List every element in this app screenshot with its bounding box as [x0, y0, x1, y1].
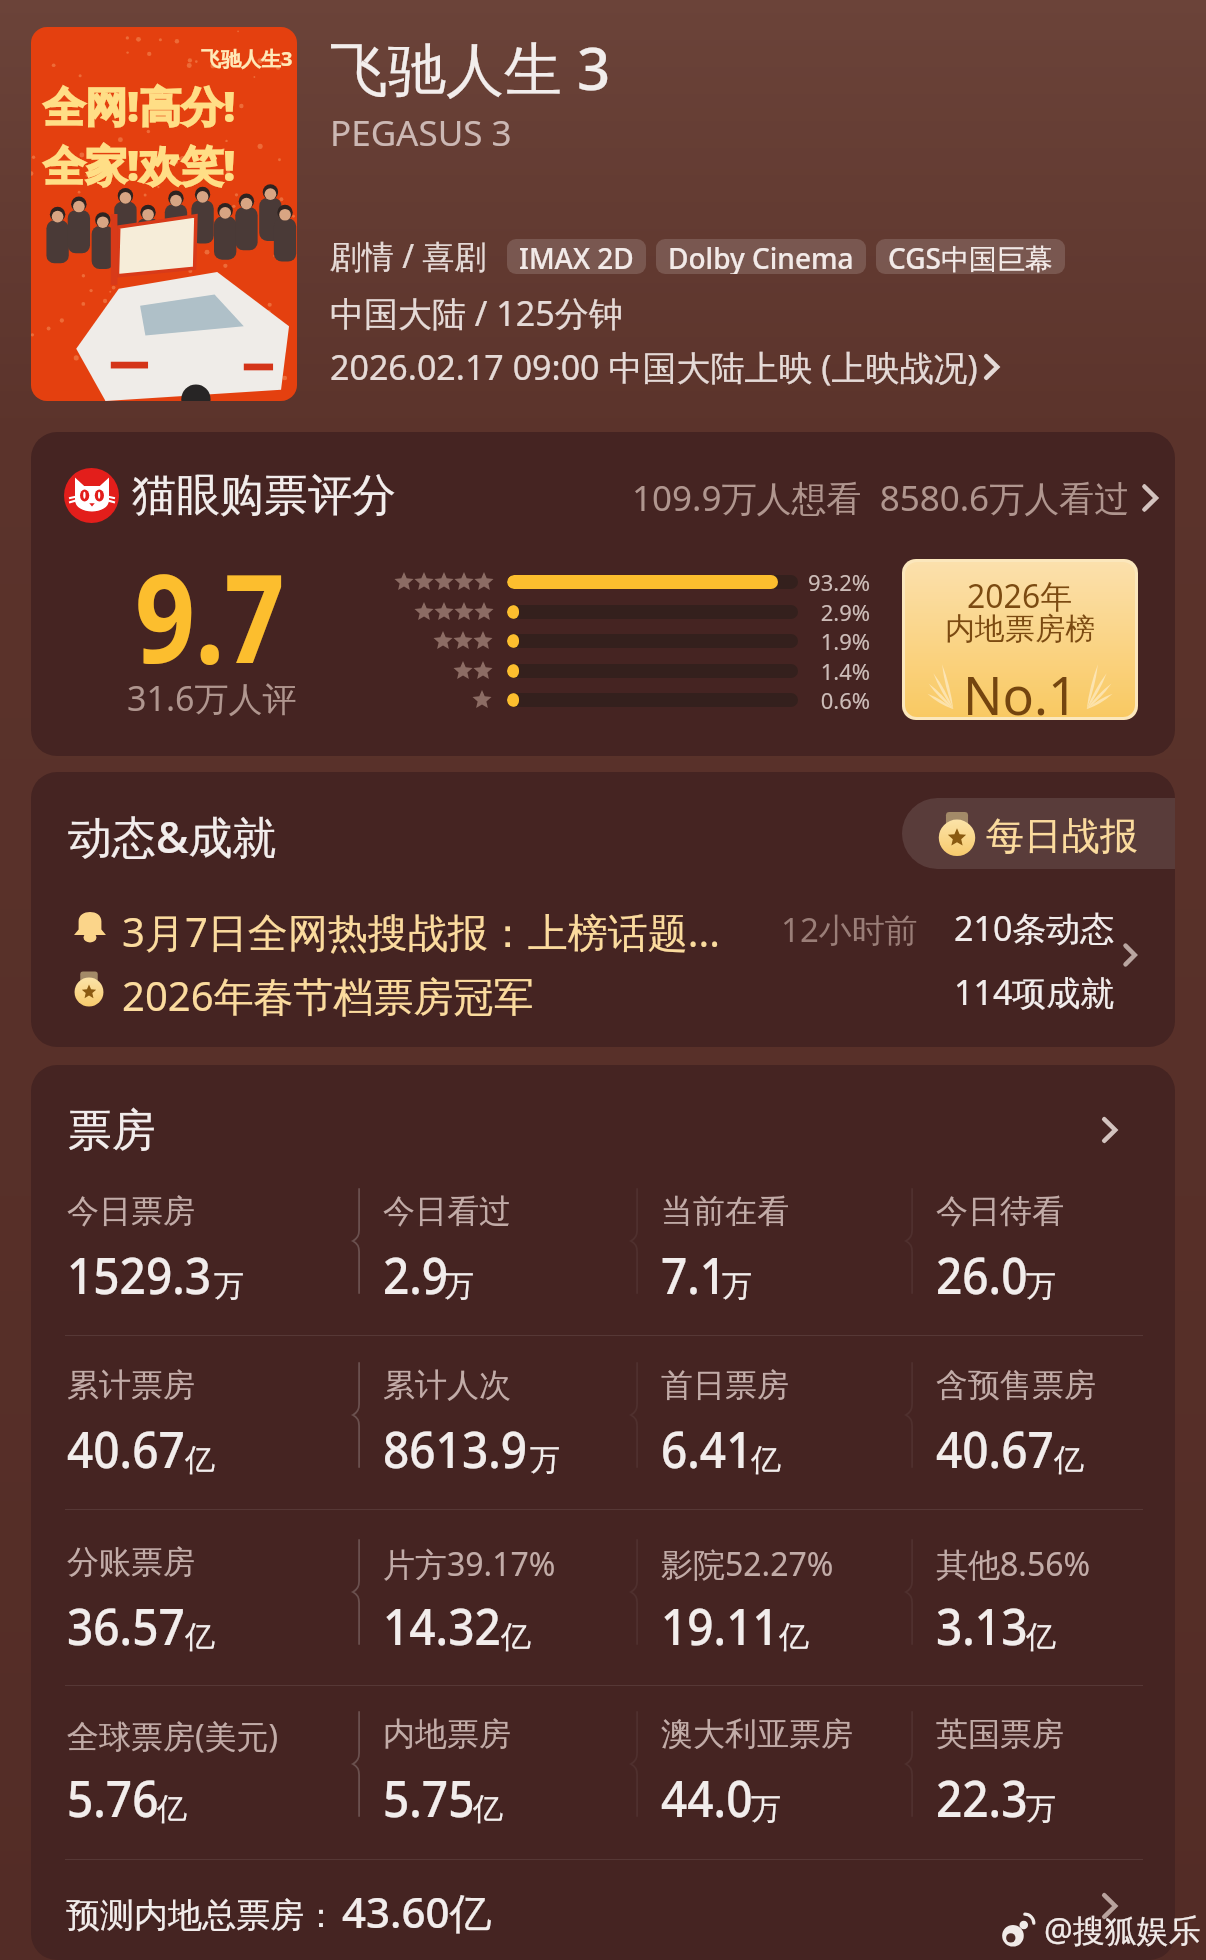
button[interactable]: More news	[1122, 942, 1138, 968]
staticText: 飞驰人生 3	[330, 28, 611, 107]
staticText: 210条动态	[954, 905, 1115, 951]
staticText: 6.41	[661, 1415, 753, 1483]
staticText: 全网!高分!	[43, 77, 236, 134]
staticText: 26.0	[936, 1241, 1028, 1309]
staticText: 93.2%	[808, 567, 870, 597]
button[interactable]: 2026年	[905, 562, 1135, 717]
staticText: 票房	[68, 1103, 156, 1158]
staticText: 1.4%	[820, 656, 870, 686]
staticText: 今日看过	[383, 1191, 511, 1231]
staticText: 5.75	[383, 1764, 475, 1832]
staticText: 万	[722, 1267, 752, 1305]
button[interactable]: 每日战报	[902, 798, 1175, 869]
staticText: CGS中国巨幕	[888, 239, 1053, 274]
staticText: 万	[444, 1267, 474, 1305]
staticText: 剧情 / 喜剧	[330, 234, 487, 278]
staticText: 猫眼购票评分	[132, 468, 396, 523]
staticText: 114项成就	[954, 969, 1115, 1015]
staticText: 9.7	[135, 533, 285, 699]
staticText: 1529.3	[67, 1241, 211, 1309]
button[interactable]: 2026.02.17 09:00 中国大陆上映 (上映战况)	[330, 344, 1001, 390]
staticText: @搜狐娱乐	[1044, 1908, 1201, 1952]
staticText: 2026年春节档票房冠军	[122, 968, 534, 1023]
staticText: 其他8.56%	[936, 1542, 1091, 1586]
staticText: 0.6%	[820, 685, 870, 715]
button[interactable]: 109.9万人想看 8580.6万人看过	[632, 474, 1160, 522]
staticText: 万	[1026, 1790, 1056, 1828]
staticText: 12小时前	[781, 907, 918, 952]
staticText: 3.13	[936, 1592, 1028, 1660]
staticText: 43.60亿	[342, 1883, 492, 1940]
staticText: 每日战报	[986, 812, 1138, 860]
staticText: 万	[530, 1441, 560, 1479]
staticText: 分账票房	[67, 1542, 195, 1582]
staticText: 累计人次	[383, 1365, 511, 1405]
staticText: 40.67	[67, 1415, 185, 1483]
staticText: 3月7日全网热搜战报：上榜话题...	[122, 904, 720, 959]
staticText: 今日票房	[67, 1191, 195, 1231]
staticText: 5.76	[67, 1764, 159, 1832]
staticText: 31.6万人评	[127, 675, 297, 721]
staticText: Dolby Cinema	[668, 239, 854, 274]
staticText: 亿	[501, 1618, 531, 1656]
staticText: 2.9	[383, 1241, 448, 1309]
staticText: 19.11	[661, 1592, 779, 1660]
button[interactable]: Movie poster 飞驰人生 3	[31, 27, 297, 401]
button[interactable]: Forecast detail	[1100, 1891, 1119, 1921]
staticText: 影院52.27%	[661, 1542, 834, 1586]
staticText: 22.3	[936, 1764, 1028, 1832]
staticText: 中国大陆 / 125分钟	[330, 290, 623, 336]
staticText: 当前在看	[661, 1191, 789, 1231]
button[interactable]: 预测内地总票房：	[66, 1880, 492, 1937]
staticText: 今日待看	[936, 1191, 1064, 1231]
staticText: 全球票房(美元)	[67, 1714, 279, 1758]
staticText: 亿	[157, 1790, 187, 1828]
staticText: 44.0	[661, 1764, 753, 1832]
staticText: 动态&成就	[68, 806, 277, 866]
staticText: 英国票房	[936, 1714, 1064, 1754]
staticText: 8613.9	[383, 1415, 527, 1483]
staticText: 全家!欢笑!	[43, 136, 236, 193]
staticText: 2026.02.17 09:00 中国大陆上映 (上映战况)	[330, 344, 978, 390]
staticText: 14.32	[383, 1592, 501, 1660]
staticText: 2026年	[967, 574, 1073, 618]
staticText: 亿	[779, 1618, 809, 1656]
staticText: 1.9%	[820, 626, 870, 656]
staticText: 万	[751, 1790, 781, 1828]
button[interactable]: More box office	[1100, 1115, 1119, 1145]
staticText: 亿	[185, 1618, 215, 1656]
staticText: 7.1	[661, 1241, 726, 1309]
staticText: 亿	[185, 1441, 215, 1479]
staticText: 飞驰人生3	[201, 45, 293, 72]
staticText: 亿	[473, 1790, 503, 1828]
staticText: 2.9%	[820, 597, 870, 627]
staticText: 内地票房	[383, 1714, 511, 1754]
staticText: IMAX 2D	[519, 239, 634, 274]
staticText: 亿	[751, 1441, 781, 1479]
staticText: 亿	[1054, 1441, 1084, 1479]
staticText: 含预售票房	[936, 1365, 1096, 1405]
staticText: 片方39.17%	[383, 1542, 556, 1586]
staticText: 109.9万人想看 8580.6万人看过	[632, 474, 1130, 522]
staticText: No.1	[963, 659, 1078, 717]
staticText: 澳大利亚票房	[661, 1714, 853, 1754]
staticText: 40.67	[936, 1415, 1054, 1483]
staticText: 累计票房	[67, 1365, 195, 1405]
staticText: 内地票房榜	[945, 610, 1095, 648]
staticText: 万	[214, 1267, 244, 1305]
staticText: 36.57	[67, 1592, 185, 1660]
staticText: 亿	[1026, 1618, 1056, 1656]
staticText: 万	[1026, 1267, 1056, 1305]
staticText: PEGASUS 3	[330, 109, 512, 157]
staticText: 预测内地总票房：	[66, 1894, 338, 1937]
staticText: 首日票房	[661, 1365, 789, 1405]
